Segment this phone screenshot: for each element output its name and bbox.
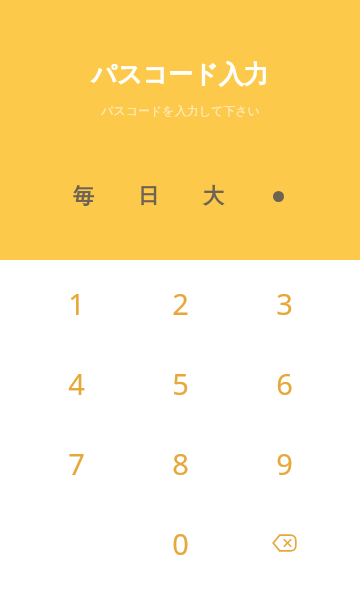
button[interactable]: 1 [24,263,128,343]
button[interactable]: Backspace [232,503,336,583]
button[interactable]: 8 [128,423,232,503]
staticText: 5 [172,364,189,403]
button[interactable]: 0 [128,503,232,583]
staticText: 毎 [73,183,94,209]
staticText: 9 [276,444,293,483]
staticText: 6 [276,364,293,403]
button[interactable]: 6 [232,343,336,423]
staticText: 日 [138,183,159,209]
button[interactable]: 9 [232,423,336,503]
button[interactable]: 7 [24,423,128,503]
staticText: 3 [276,284,293,323]
staticText: 0 [172,524,189,563]
staticText: 4 [68,364,85,403]
staticText: パスコードを入力して下さい [101,103,260,118]
staticText: パスコード入力 [91,59,269,90]
button[interactable]: 2 [128,263,232,343]
staticText: 2 [172,284,189,323]
button[interactable]: 3 [232,263,336,343]
button[interactable]: 4 [24,343,128,423]
staticText: 8 [172,444,189,483]
staticText: 7 [68,444,85,483]
button[interactable]: 5 [128,343,232,423]
staticText: 大 [203,183,224,209]
staticText: 1 [68,284,85,323]
